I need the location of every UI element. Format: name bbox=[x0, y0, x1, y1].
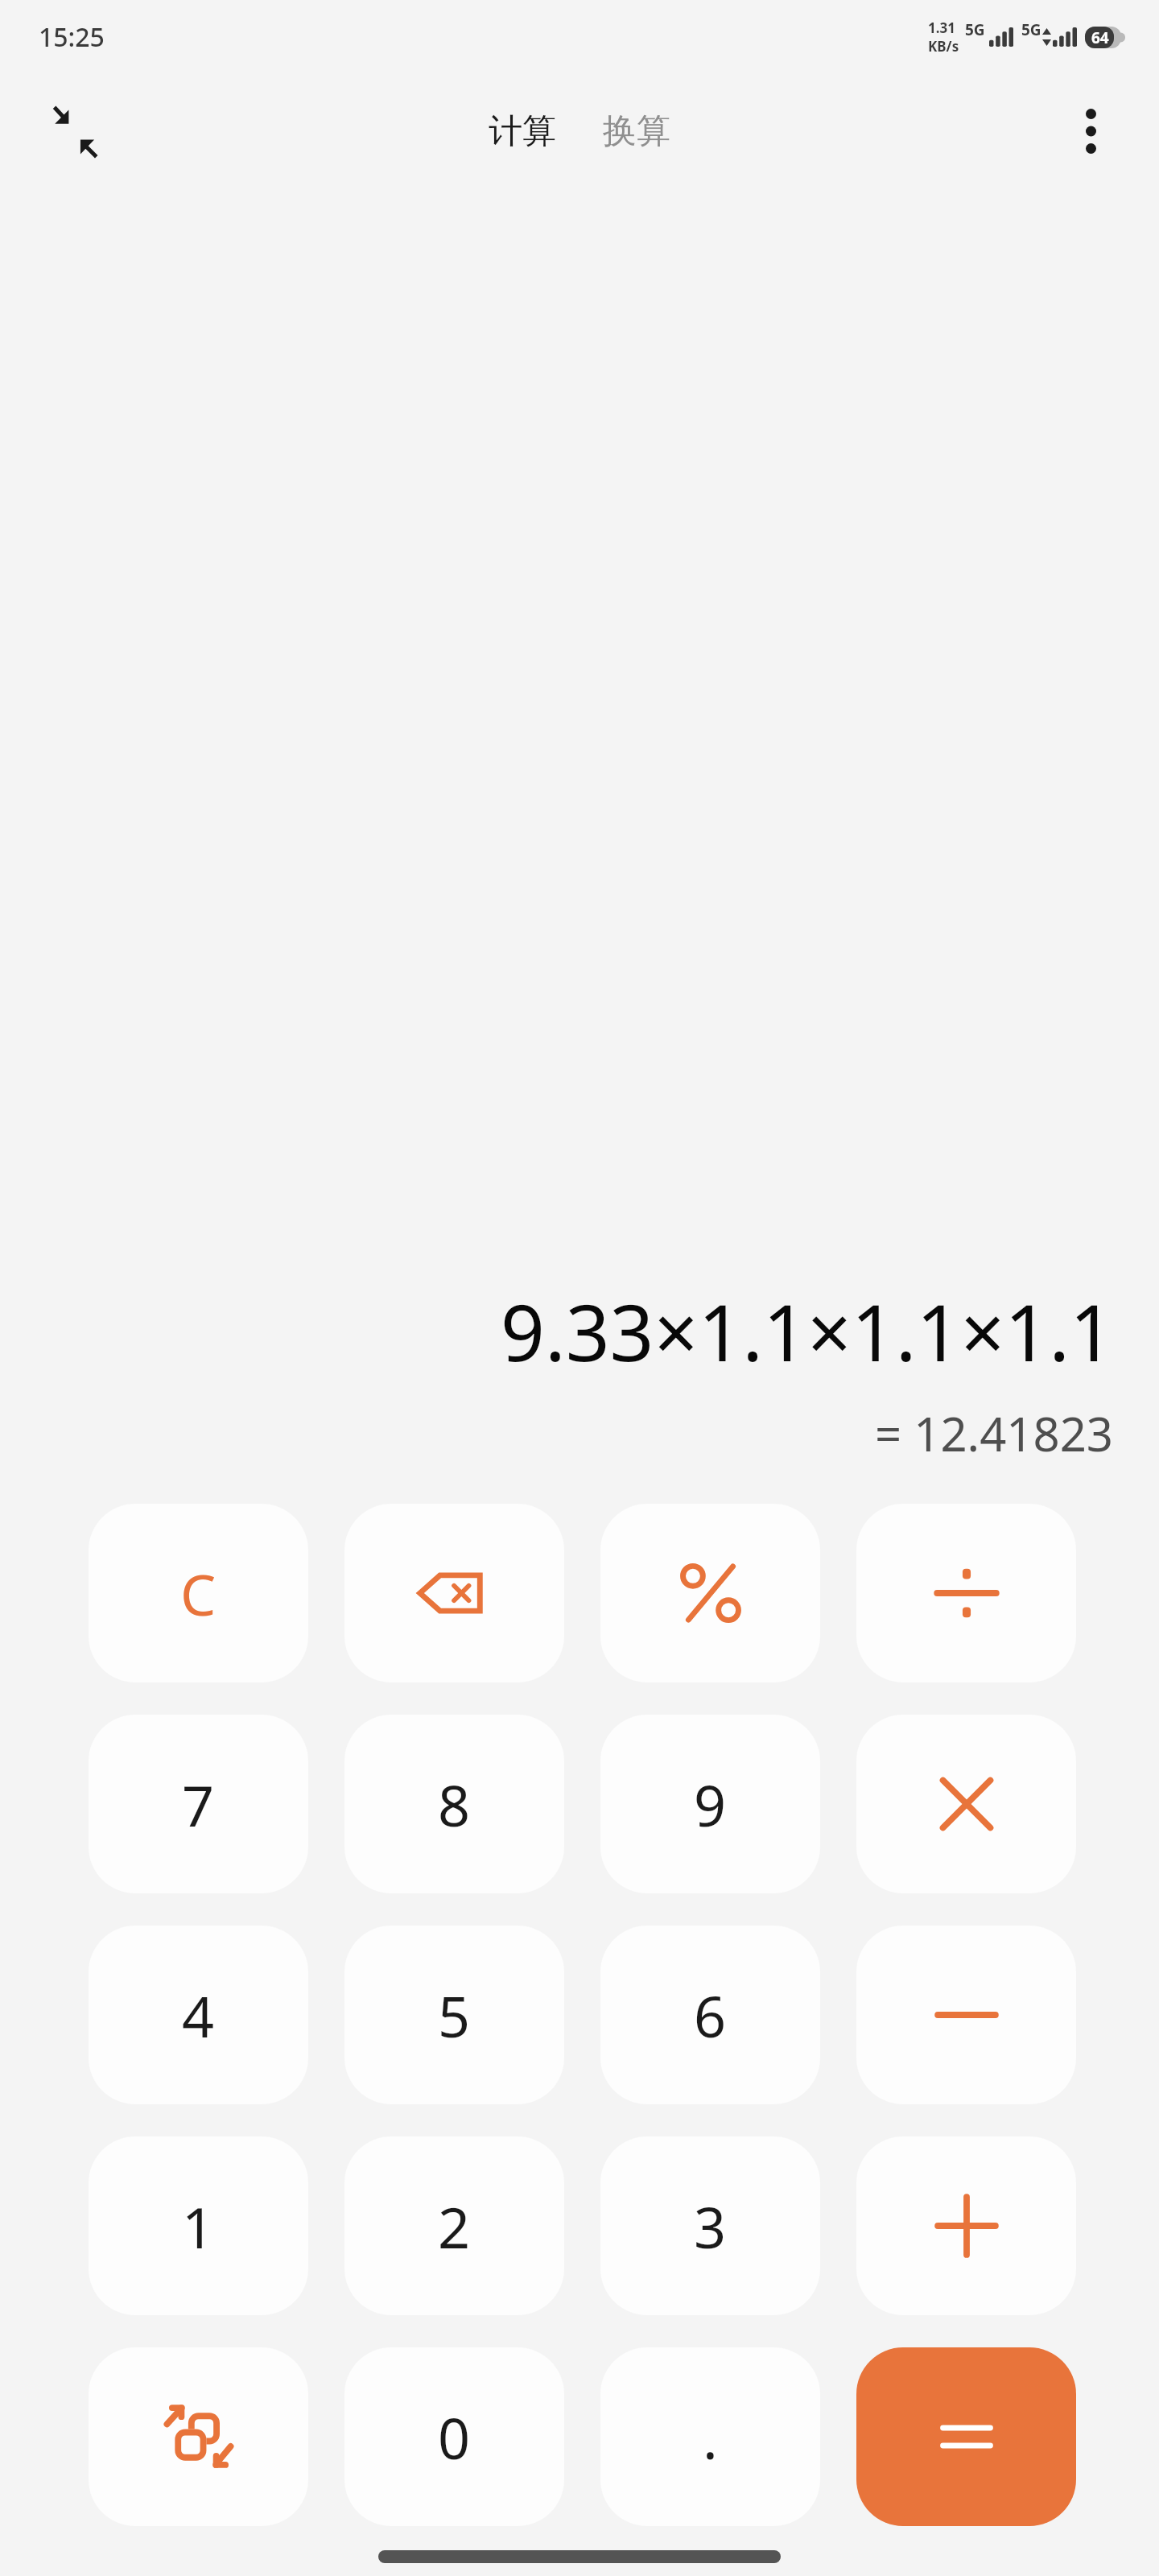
staticText: 5G bbox=[965, 19, 985, 40]
staticText: 64 bbox=[1091, 27, 1109, 48]
staticText: 5G bbox=[1021, 19, 1041, 40]
button[interactable]: 2 bbox=[344, 2136, 564, 2315]
button[interactable]: Collapse to floating window bbox=[40, 97, 108, 165]
button[interactable]: Divide bbox=[856, 1504, 1076, 1682]
button[interactable]: C bbox=[89, 1504, 308, 1682]
staticText: 7 bbox=[182, 1766, 215, 1843]
staticText: 5 bbox=[438, 1977, 471, 2054]
staticText: 8 bbox=[438, 1766, 471, 1843]
staticText: 1 bbox=[182, 2188, 215, 2264]
staticText: . bbox=[703, 2399, 718, 2475]
button[interactable]: Minus bbox=[856, 1926, 1076, 2104]
button[interactable]: 6 bbox=[600, 1926, 820, 2104]
button[interactable]: Equals bbox=[856, 2347, 1076, 2526]
staticText: 2 bbox=[438, 2188, 471, 2264]
button[interactable]: Convert bbox=[89, 2347, 308, 2526]
button[interactable]: 7 bbox=[89, 1715, 308, 1893]
button[interactable]: Backspace bbox=[344, 1504, 564, 1682]
button[interactable]: 8 bbox=[344, 1715, 564, 1893]
button[interactable]: 0 bbox=[344, 2347, 564, 2526]
staticText: 3 bbox=[694, 2188, 727, 2264]
staticText: 1.31 bbox=[928, 19, 955, 37]
button[interactable]: 3 bbox=[600, 2136, 820, 2315]
button[interactable]: Percent bbox=[600, 1504, 820, 1682]
staticText: 计算 bbox=[489, 110, 556, 153]
button[interactable]: More options bbox=[1059, 100, 1122, 163]
staticText: 换算 bbox=[603, 110, 670, 153]
staticText: 4 bbox=[182, 1977, 215, 2054]
staticText: 15:25 bbox=[39, 19, 105, 55]
staticText: 0 bbox=[438, 2399, 471, 2475]
button[interactable]: 5 bbox=[344, 1926, 564, 2104]
staticText: KB/s bbox=[928, 37, 959, 56]
staticText: 9.33×1.1×1.1×1.1 bbox=[501, 1278, 1114, 1384]
staticText: C bbox=[180, 1555, 217, 1632]
button[interactable]: 9 bbox=[600, 1715, 820, 1893]
button[interactable]: 计算 bbox=[476, 102, 569, 161]
button[interactable]: 换算 bbox=[590, 102, 683, 161]
button[interactable]: 4 bbox=[89, 1926, 308, 2104]
button[interactable]: Multiply bbox=[856, 1715, 1076, 1893]
staticText: 6 bbox=[694, 1977, 727, 2054]
staticText: 9 bbox=[694, 1766, 727, 1843]
button[interactable]: 1 bbox=[89, 2136, 308, 2315]
staticText: = 12.41823 bbox=[875, 1402, 1114, 1465]
button[interactable]: . bbox=[600, 2347, 820, 2526]
button[interactable]: Plus bbox=[856, 2136, 1076, 2315]
